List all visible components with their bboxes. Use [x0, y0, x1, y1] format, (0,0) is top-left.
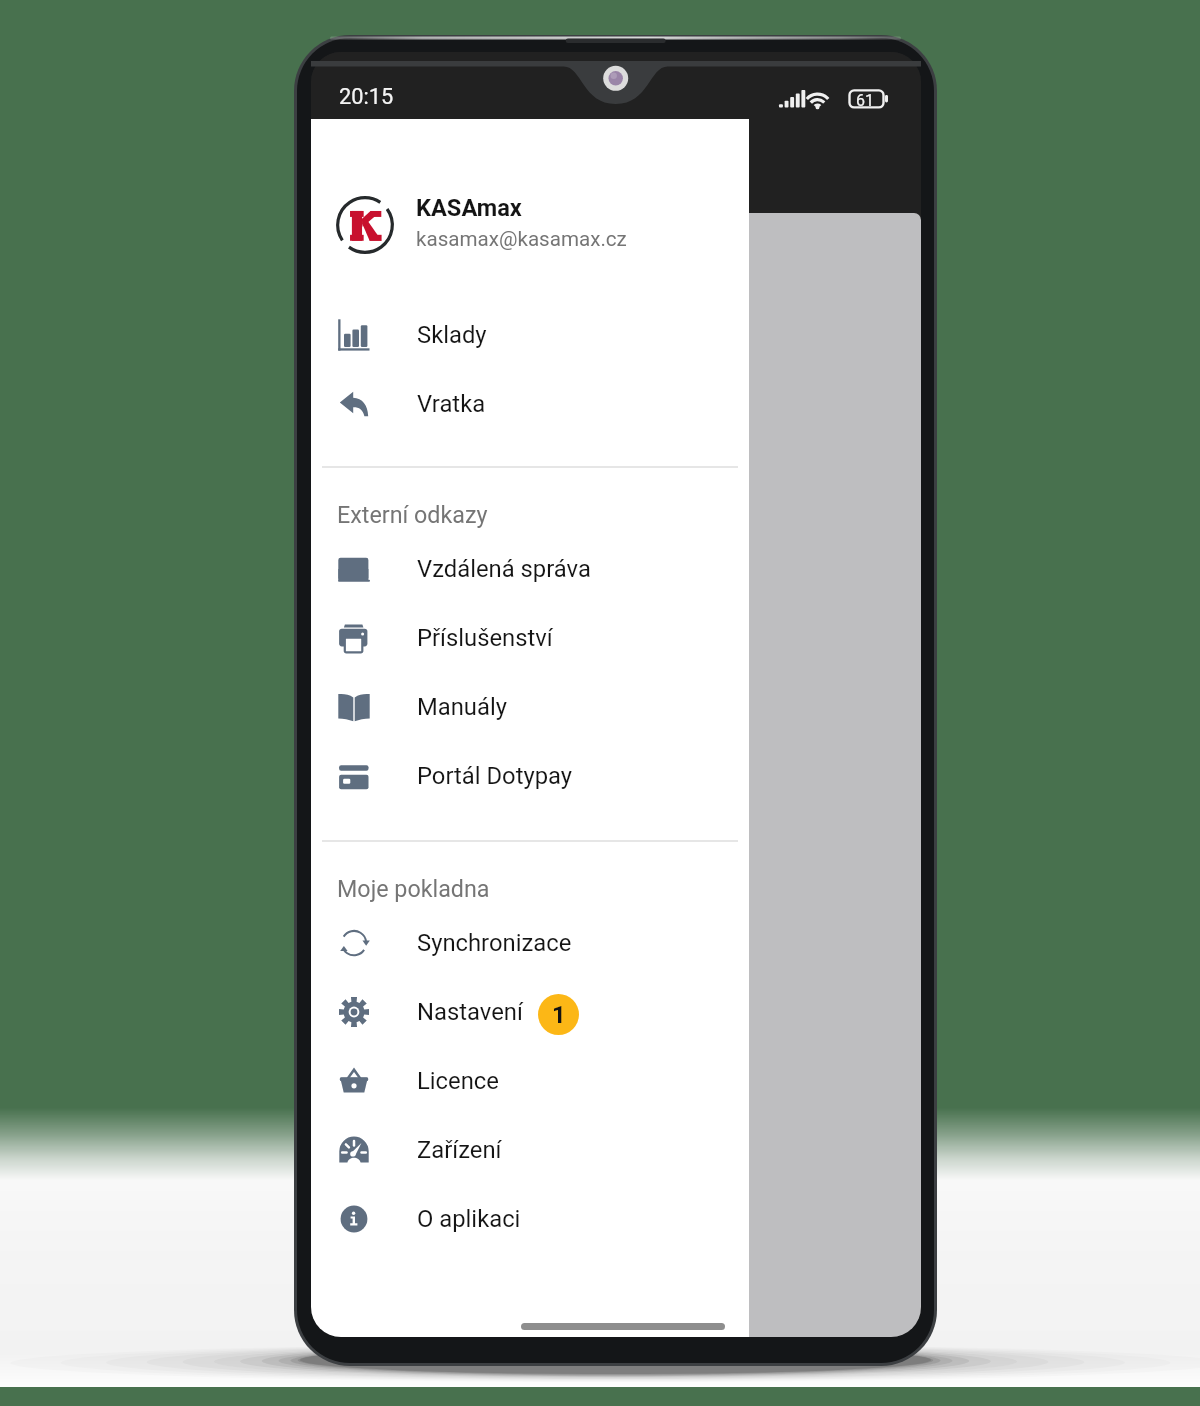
staticText: Sklady	[417, 321, 487, 349]
staticText: Externí odkazy	[337, 501, 488, 528]
staticText: 61	[856, 91, 874, 110]
button[interactable]: Nastavení	[311, 977, 749, 1046]
staticText: Zařízení	[417, 1136, 502, 1164]
button[interactable]: Vratka	[311, 369, 749, 438]
staticText: Synchronizace	[417, 929, 572, 957]
staticText: Manuály	[417, 693, 507, 721]
button[interactable]: O aplikaci	[311, 1184, 749, 1253]
staticText: KASAmax	[416, 194, 522, 222]
button[interactable]: Vzdálená správa	[311, 534, 749, 603]
staticText: 20:15	[339, 84, 394, 110]
button[interactable]: Příslušenství	[311, 603, 749, 672]
staticText: Vzdálená správa	[417, 555, 591, 583]
staticText: kasamax@kasamax.cz	[416, 227, 627, 251]
staticText: Příslušenství	[417, 624, 553, 652]
staticText: O aplikaci	[417, 1205, 521, 1233]
button[interactable]: KASAmax	[311, 179, 749, 271]
staticText: 1	[552, 1001, 566, 1029]
button[interactable]: Sklady	[311, 300, 749, 369]
staticText: Nastavení	[417, 998, 523, 1026]
button[interactable]: Synchronizace	[311, 908, 749, 977]
staticText: Moje pokladna	[337, 875, 490, 902]
button[interactable]: Licence	[311, 1046, 749, 1115]
staticText: Portál Dotypay	[417, 762, 573, 790]
staticText: Licence	[417, 1067, 499, 1095]
button[interactable]: Zařízení	[311, 1115, 749, 1184]
button[interactable]: Manuály	[311, 672, 749, 741]
button[interactable]: Portál Dotypay	[311, 741, 749, 810]
staticText: Vratka	[417, 390, 486, 418]
